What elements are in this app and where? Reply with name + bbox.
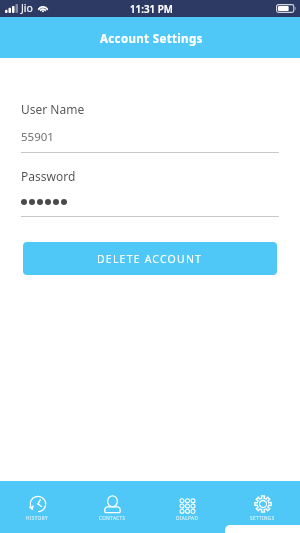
staticText: CONTACTS (99, 515, 126, 521)
staticText: Account Settings (100, 31, 203, 47)
button[interactable]: History (0, 481, 75, 533)
staticText: User Name (21, 101, 85, 117)
button[interactable]: DELETE ACCOUNT (23, 242, 277, 275)
staticText: 55901 (21, 129, 54, 145)
button[interactable]: Dialpad (150, 481, 225, 533)
staticText: SETTINGS (250, 515, 275, 521)
staticText: Jio (21, 1, 33, 15)
button[interactable]: Contacts (75, 481, 150, 533)
staticText: HISTORY (26, 515, 49, 521)
staticText: 11:31 PM (130, 3, 173, 16)
staticText: DELETE ACCOUNT (97, 252, 203, 266)
button[interactable]: Settings (225, 481, 300, 533)
staticText: Password (21, 168, 76, 184)
staticText: DIALPAD (176, 515, 199, 521)
